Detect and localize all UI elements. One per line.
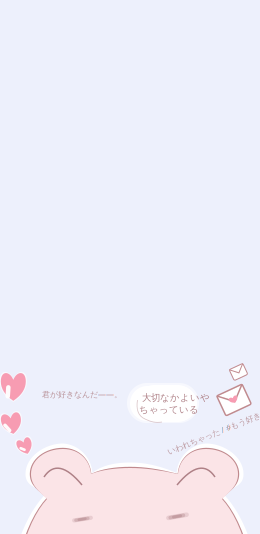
staticText: ちゃっている [139, 404, 199, 415]
staticText: いわれちゃった / #もう好き [164, 428, 260, 439]
staticText: 大切なかよいや [142, 392, 210, 403]
staticText: 君が好きなんだ――。 [42, 389, 122, 400]
